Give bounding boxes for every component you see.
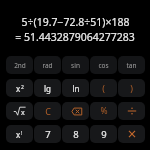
staticText: x <box>21 108 25 118</box>
staticText: = 51.4432879064277283 <box>15 30 135 44</box>
staticText: 2nd <box>14 61 26 70</box>
staticText: ) <box>130 82 133 94</box>
button[interactable]: Clear <box>34 102 61 120</box>
button[interactable]: Square root <box>6 102 33 120</box>
button[interactable]: x <box>6 79 33 97</box>
staticText: 7 <box>45 128 51 141</box>
staticText: rad <box>42 61 53 70</box>
staticText: tan <box>126 61 137 70</box>
button[interactable]: 5÷(19.7−72.8÷51)×188 <box>0 0 150 52</box>
staticText: ! <box>21 130 23 137</box>
button[interactable]: lg <box>34 79 61 97</box>
button[interactable]: tan <box>118 56 145 74</box>
button[interactable]: 9 <box>90 125 117 143</box>
button[interactable]: ln <box>62 79 89 97</box>
staticText: x <box>16 129 21 140</box>
button[interactable]: 7 <box>34 125 61 143</box>
staticText: 9 <box>101 128 107 141</box>
button[interactable]: Backspace <box>62 102 89 120</box>
staticText: lg <box>44 83 51 94</box>
button[interactable]: ( <box>90 79 117 97</box>
staticText: ln <box>72 83 80 94</box>
button[interactable]: cos <box>90 56 117 74</box>
button[interactable]: sin <box>62 56 89 74</box>
staticText: 5÷(19.7−72.8÷51)×188 <box>21 15 130 29</box>
button[interactable]: ) <box>118 79 145 97</box>
staticText: C <box>45 105 51 117</box>
staticText: 2 <box>21 84 24 91</box>
button[interactable]: rad <box>34 56 61 74</box>
button[interactable]: Multiply <box>118 125 145 143</box>
staticText: 8 <box>73 128 79 141</box>
button[interactable]: 2nd <box>6 56 33 74</box>
staticText: sin <box>71 61 80 70</box>
button[interactable]: x <box>6 125 33 143</box>
button[interactable]: 8 <box>62 125 89 143</box>
button[interactable]: Divide <box>118 102 145 120</box>
staticText: x <box>16 83 21 94</box>
button[interactable]: Percent <box>90 102 117 120</box>
staticText: % <box>100 105 108 117</box>
staticText: ( <box>102 82 105 94</box>
staticText: cos <box>98 61 109 70</box>
